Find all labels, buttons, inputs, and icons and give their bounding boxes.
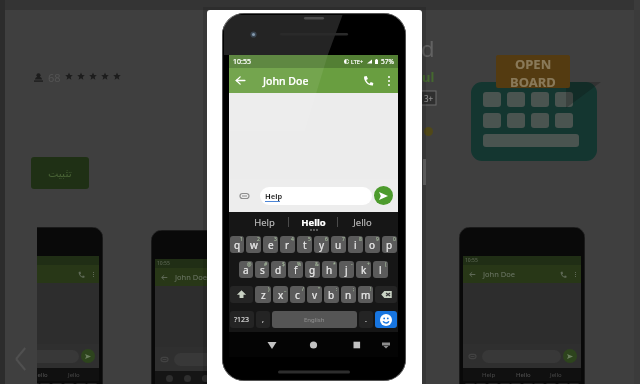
button[interactable]: h — [322, 261, 337, 278]
staticText: LTE+ — [351, 58, 364, 65]
staticText: k — [361, 263, 367, 277]
button[interactable]: q — [230, 236, 244, 253]
staticText: ) — [268, 286, 270, 293]
staticText: ( — [385, 261, 387, 268]
button[interactable]: Help — [241, 212, 288, 232]
button[interactable]: Backspace — [375, 286, 397, 303]
button[interactable]: Hello — [289, 212, 337, 232]
button[interactable]: g — [305, 261, 320, 278]
staticText: Jello — [550, 371, 562, 379]
button[interactable]: , — [256, 311, 270, 328]
staticText: _ — [284, 286, 287, 293]
staticText: Jello — [353, 216, 372, 229]
button[interactable]: 10:55 — [459, 227, 585, 384]
button[interactable]: z — [255, 286, 271, 303]
staticText: & — [315, 261, 319, 268]
staticText: j — [345, 263, 348, 277]
button[interactable]: More options — [380, 68, 398, 93]
button[interactable]: ?123 — [230, 311, 254, 328]
staticText: x — [278, 288, 284, 302]
staticText: 1 — [240, 236, 243, 243]
button[interactable]: تثبيت — [31, 157, 89, 189]
staticText: v — [312, 288, 318, 302]
staticText: BOARD — [510, 73, 556, 88]
staticText: o — [369, 238, 376, 252]
button[interactable]: Previous — [14, 348, 28, 370]
staticText: ul — [422, 68, 435, 86]
button[interactable]: i — [348, 236, 363, 253]
staticText: 8 — [359, 236, 362, 243]
staticText: 57% — [381, 57, 394, 66]
button[interactable]: x — [273, 286, 288, 303]
staticText: , — [262, 315, 264, 325]
staticText: c — [295, 288, 300, 302]
staticText: John Doe — [263, 74, 356, 88]
staticText: Help — [265, 191, 283, 201]
button[interactable]: o — [365, 236, 380, 253]
button[interactable]: u — [331, 236, 346, 253]
button[interactable]: v — [307, 286, 322, 303]
button[interactable]: Jello — [338, 212, 386, 232]
staticText: d — [275, 263, 282, 277]
button[interactable]: Shift — [230, 286, 253, 303]
staticText: OPEN — [515, 55, 552, 73]
button[interactable]: 10:55 — [151, 230, 277, 384]
button[interactable]: d — [271, 261, 286, 278]
button[interactable]: Emoji — [375, 311, 397, 328]
staticText: i — [354, 238, 357, 252]
staticText: e — [268, 238, 274, 252]
staticText: ?123 — [234, 315, 250, 325]
staticText: r — [285, 238, 290, 252]
button[interactable]: w — [246, 236, 261, 253]
button[interactable]: b — [324, 286, 339, 303]
staticText: Hello — [516, 371, 531, 379]
staticText: 3 — [274, 236, 277, 243]
button[interactable]: j — [339, 261, 354, 278]
button[interactable]: Call — [356, 68, 380, 93]
button[interactable]: English — [272, 311, 357, 328]
staticText: ! — [370, 286, 372, 293]
button[interactable]: l — [373, 261, 388, 278]
button[interactable]: p — [382, 236, 397, 253]
staticText: Jello — [68, 371, 80, 379]
staticText: John Doe — [483, 269, 516, 279]
staticText: g — [309, 263, 316, 277]
button[interactable]: f — [288, 261, 303, 278]
staticText: 4 — [291, 236, 294, 243]
staticText: - — [351, 261, 353, 268]
button[interactable]: c — [290, 286, 305, 303]
staticText: + — [367, 261, 370, 268]
staticText: * — [333, 261, 336, 268]
button[interactable]: e — [263, 236, 278, 253]
staticText: w — [250, 238, 258, 252]
button[interactable]: y — [314, 236, 329, 253]
button[interactable]: m — [358, 286, 373, 303]
button[interactable]: k — [356, 261, 371, 278]
button[interactable]: 10:55 — [207, 10, 422, 384]
staticText: تثبيت — [48, 167, 72, 180]
staticText: % — [297, 261, 302, 268]
staticText: 9 — [376, 236, 379, 243]
button[interactable]: r — [280, 236, 295, 253]
staticText: Hello — [37, 371, 48, 379]
button[interactable]: t — [297, 236, 312, 253]
button[interactable]: Back — [229, 68, 251, 93]
staticText: f — [294, 263, 298, 277]
button[interactable]: . — [359, 311, 373, 328]
staticText: 10:55 — [465, 257, 478, 264]
staticText: b — [328, 288, 335, 302]
button[interactable]: Send — [374, 186, 393, 205]
button[interactable]: n — [341, 286, 356, 303]
staticText: $ — [282, 261, 285, 268]
button[interactable]: a — [239, 261, 253, 278]
staticText: Hello — [301, 216, 326, 229]
button[interactable]: s — [255, 261, 269, 278]
button[interactable]: 10:55 — [37, 227, 103, 384]
button[interactable]: Help — [260, 187, 372, 205]
staticText: 10:55 — [157, 260, 170, 267]
staticText: ; — [353, 286, 355, 293]
staticText: 68 — [48, 70, 61, 85]
staticText: : — [336, 286, 338, 293]
button[interactable]: Attach file — [229, 179, 260, 212]
staticText: 2 — [257, 236, 260, 243]
